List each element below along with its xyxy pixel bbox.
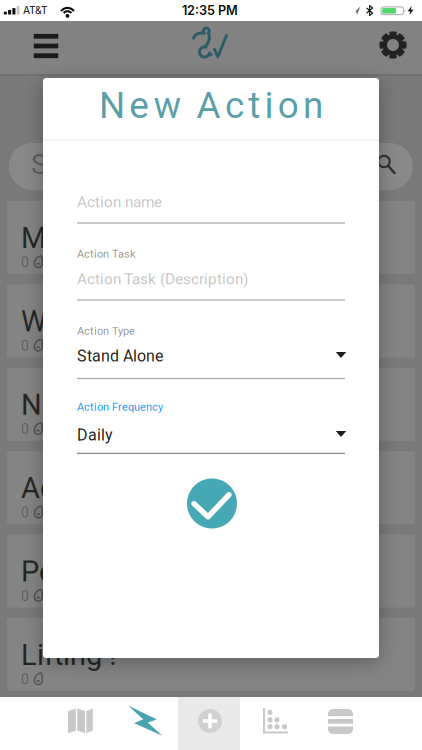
staticText: Action name [77, 193, 162, 211]
button[interactable]: Pedal [7, 535, 415, 608]
button[interactable]: Meditate [7, 201, 415, 274]
staticText: Nap [21, 388, 74, 422]
button[interactable]: Nap [7, 368, 415, 441]
staticText: c [225, 84, 244, 127]
staticText: w [153, 84, 181, 127]
staticText: Action Type [77, 325, 135, 337]
staticText: Action Task (Description) [77, 270, 248, 288]
button[interactable]: Save [187, 478, 237, 528]
staticText: Action Frequency [77, 401, 163, 413]
staticText: Pedal [21, 555, 93, 589]
staticText: A [197, 84, 221, 127]
button[interactable]: Lists [308, 697, 373, 750]
button[interactable]: Action Type: Stand Alone [77, 342, 345, 368]
staticText: 0 [21, 671, 29, 688]
button[interactable]: Workout [7, 284, 415, 357]
staticText: o [278, 84, 299, 127]
staticText: 0 [21, 504, 29, 521]
button[interactable]: Lifting ! [7, 618, 415, 691]
staticText: i [264, 84, 273, 127]
staticText: AT&T [23, 4, 48, 17]
staticText: Active [21, 471, 100, 505]
staticText: Action Task [77, 248, 136, 260]
staticText: Daily [77, 426, 113, 444]
button[interactable]: Settings [371, 23, 415, 67]
staticText: Workout [21, 304, 130, 338]
staticText: Meditate [21, 221, 133, 255]
staticText: n [303, 84, 323, 127]
staticText: 0 [21, 421, 29, 437]
button[interactable]: Add [176, 697, 241, 750]
staticText: 0 [21, 254, 29, 271]
staticText: Search [31, 148, 117, 181]
staticText: N [99, 84, 125, 127]
button[interactable]: Actions [113, 697, 178, 750]
button[interactable]: Action Frequency: Daily [77, 421, 345, 447]
button[interactable]: Menu [24, 24, 68, 68]
staticText: Lifting ! [21, 638, 116, 672]
staticText: 12:35 PM [182, 3, 238, 18]
button[interactable]: Active [7, 451, 415, 524]
staticText: t [248, 84, 260, 127]
staticText: 0 [21, 338, 29, 354]
button[interactable]: Map [48, 697, 113, 750]
staticText: e [129, 84, 149, 127]
button[interactable]: Stats [243, 697, 308, 750]
staticText: 0 [21, 588, 29, 604]
staticText: Stand Alone [77, 347, 163, 365]
button[interactable]: Search [9, 143, 413, 190]
